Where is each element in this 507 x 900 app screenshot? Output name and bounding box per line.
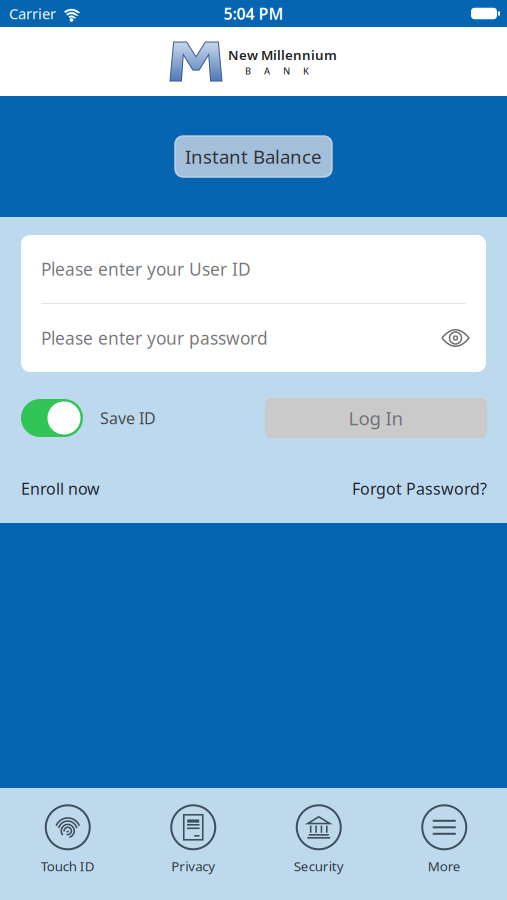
- staticText: Please enter your password: [41, 326, 268, 349]
- staticText: Log In: [348, 406, 403, 430]
- button[interactable]: Instant Balance: [174, 135, 332, 177]
- button[interactable]: Touch ID: [5, 805, 130, 875]
- staticText: Security: [294, 857, 344, 875]
- staticText: Carrier: [9, 4, 56, 23]
- staticText: K: [303, 65, 309, 77]
- staticText: N: [283, 65, 290, 77]
- staticText: Enroll now: [21, 478, 100, 499]
- button[interactable]: Log In: [265, 398, 487, 438]
- button[interactable]: More: [381, 805, 507, 875]
- staticText: Instant Balance: [185, 144, 322, 169]
- staticText: A: [264, 65, 270, 77]
- staticText: B: [245, 65, 251, 77]
- button[interactable]: Privacy: [130, 805, 256, 875]
- button[interactable]: Forgot Password?: [352, 478, 487, 499]
- button[interactable]: Security: [256, 805, 381, 875]
- staticText: Privacy: [171, 857, 215, 875]
- button[interactable]: Please enter your User ID: [21, 235, 486, 303]
- button[interactable]: Save ID: [21, 399, 83, 437]
- staticText: 5:04 PM: [223, 3, 283, 24]
- staticText: Forgot Password?: [352, 478, 487, 499]
- staticText: Please enter your User ID: [41, 257, 251, 280]
- button[interactable]: Please enter your password: [21, 304, 486, 372]
- staticText: Touch ID: [41, 857, 95, 875]
- button[interactable]: Enroll now: [21, 478, 100, 499]
- staticText: New Millennium: [228, 46, 337, 64]
- staticText: More: [428, 857, 461, 875]
- staticText: Save ID: [100, 407, 156, 429]
